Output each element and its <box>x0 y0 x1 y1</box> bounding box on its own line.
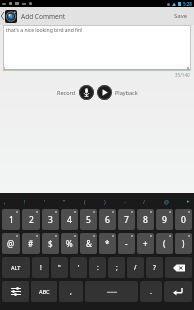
button[interactable]: * <box>99 233 116 254</box>
staticText: / <box>134 263 137 272</box>
staticText: ( <box>84 198 86 205</box>
staticText: Save <box>174 12 188 20</box>
button[interactable]: ABC <box>31 281 57 302</box>
staticText: , <box>4 198 6 205</box>
staticText: - <box>124 198 126 205</box>
button[interactable]: ? <box>146 257 163 278</box>
button[interactable]: ( <box>156 233 173 254</box>
button[interactable] <box>85 281 138 302</box>
staticText: + <box>143 238 148 249</box>
button[interactable]: 0 <box>175 209 192 230</box>
staticText: @ <box>164 198 169 205</box>
staticText: 7 <box>124 214 129 226</box>
button[interactable]: 4 <box>61 209 78 230</box>
staticText: ) <box>104 198 106 205</box>
staticText: 5 <box>86 214 91 226</box>
button[interactable]: . <box>140 281 162 302</box>
staticText: @ <box>7 238 15 249</box>
button[interactable]: & <box>80 233 97 254</box>
staticText: : <box>97 263 99 272</box>
button[interactable]: " <box>51 257 68 278</box>
button[interactable]: - <box>118 233 135 254</box>
button[interactable] <box>97 85 112 100</box>
staticText: / <box>143 198 146 205</box>
button[interactable]: 8 <box>137 209 154 230</box>
button[interactable]: ) <box>175 233 192 254</box>
staticText: - <box>125 238 128 249</box>
staticText: ▸ <box>187 198 190 204</box>
button[interactable]: 3 <box>42 209 59 230</box>
button[interactable]: / <box>143 198 146 205</box>
staticText: 4 <box>67 214 72 226</box>
button[interactable]: 2 <box>22 209 40 230</box>
staticText: 5:28 <box>183 1 192 7</box>
staticText: Playback <box>115 89 138 96</box>
button[interactable]: 9 <box>156 209 173 230</box>
button[interactable]: 7 <box>118 209 135 230</box>
button[interactable]: @ <box>164 198 169 205</box>
staticText: 0 <box>181 214 186 226</box>
staticText: 9 <box>162 214 167 226</box>
staticText: ; <box>116 263 118 272</box>
button[interactable] <box>79 85 94 100</box>
staticText: * <box>105 238 110 249</box>
staticText: 1 <box>9 214 14 226</box>
staticText: ' <box>44 198 46 205</box>
staticText: ) <box>182 238 185 249</box>
staticText: " <box>63 198 66 205</box>
staticText: $ <box>48 238 53 249</box>
button[interactable]: ▸ <box>187 198 190 204</box>
button[interactable]: 1 <box>2 209 20 230</box>
button[interactable]: : <box>89 257 106 278</box>
staticText: # <box>28 238 34 249</box>
staticText: 35/140 <box>175 72 190 78</box>
button[interactable]: ' <box>70 257 87 278</box>
button[interactable]: ! <box>32 257 49 278</box>
button[interactable]: $ <box>42 233 59 254</box>
staticText: ? <box>153 263 156 272</box>
staticText: ABC <box>39 288 50 295</box>
button[interactable]: # <box>22 233 40 254</box>
button[interactable]: " <box>63 198 66 205</box>
staticText: 8 <box>143 214 148 226</box>
button[interactable]: that's a nice looking bird and fin! <box>3 25 191 71</box>
button[interactable]: ) <box>104 198 106 205</box>
staticText: " <box>58 263 61 272</box>
staticText: 3 <box>48 214 53 226</box>
staticText: Add Comment <box>21 12 66 21</box>
button[interactable] <box>2 281 29 302</box>
staticText: 6 <box>105 214 110 226</box>
button[interactable]: Save <box>168 7 194 25</box>
button[interactable]: ( <box>84 198 86 205</box>
staticText: ALT <box>11 264 21 271</box>
button[interactable]: @ <box>2 233 20 254</box>
button[interactable]: / <box>127 257 144 278</box>
button[interactable]: ! <box>24 198 26 205</box>
button[interactable]: , <box>59 281 83 302</box>
staticText: ! <box>40 263 42 272</box>
button[interactable]: 5 <box>80 209 97 230</box>
button[interactable]: ALT <box>2 257 30 278</box>
button[interactable]: ' <box>44 198 46 205</box>
staticText: % <box>66 238 73 249</box>
button[interactable]: Add Comment <box>0 7 194 25</box>
staticText: 2 <box>29 214 34 226</box>
staticText: ' <box>78 263 80 272</box>
button[interactable]: - <box>124 198 126 205</box>
button[interactable]: , <box>4 198 6 205</box>
button[interactable] <box>164 281 192 302</box>
staticText: . <box>150 287 152 297</box>
staticText: , <box>70 287 72 297</box>
button[interactable]: + <box>137 233 154 254</box>
staticText: Record <box>57 89 76 96</box>
button[interactable] <box>165 257 192 278</box>
staticText: that's a nice looking bird and fin! <box>6 27 83 34</box>
button[interactable]: 6 <box>99 209 116 230</box>
staticText: ! <box>24 198 26 205</box>
button[interactable]: % <box>61 233 78 254</box>
button[interactable]: ; <box>108 257 125 278</box>
staticText: ( <box>163 238 166 249</box>
staticText: & <box>86 238 92 249</box>
